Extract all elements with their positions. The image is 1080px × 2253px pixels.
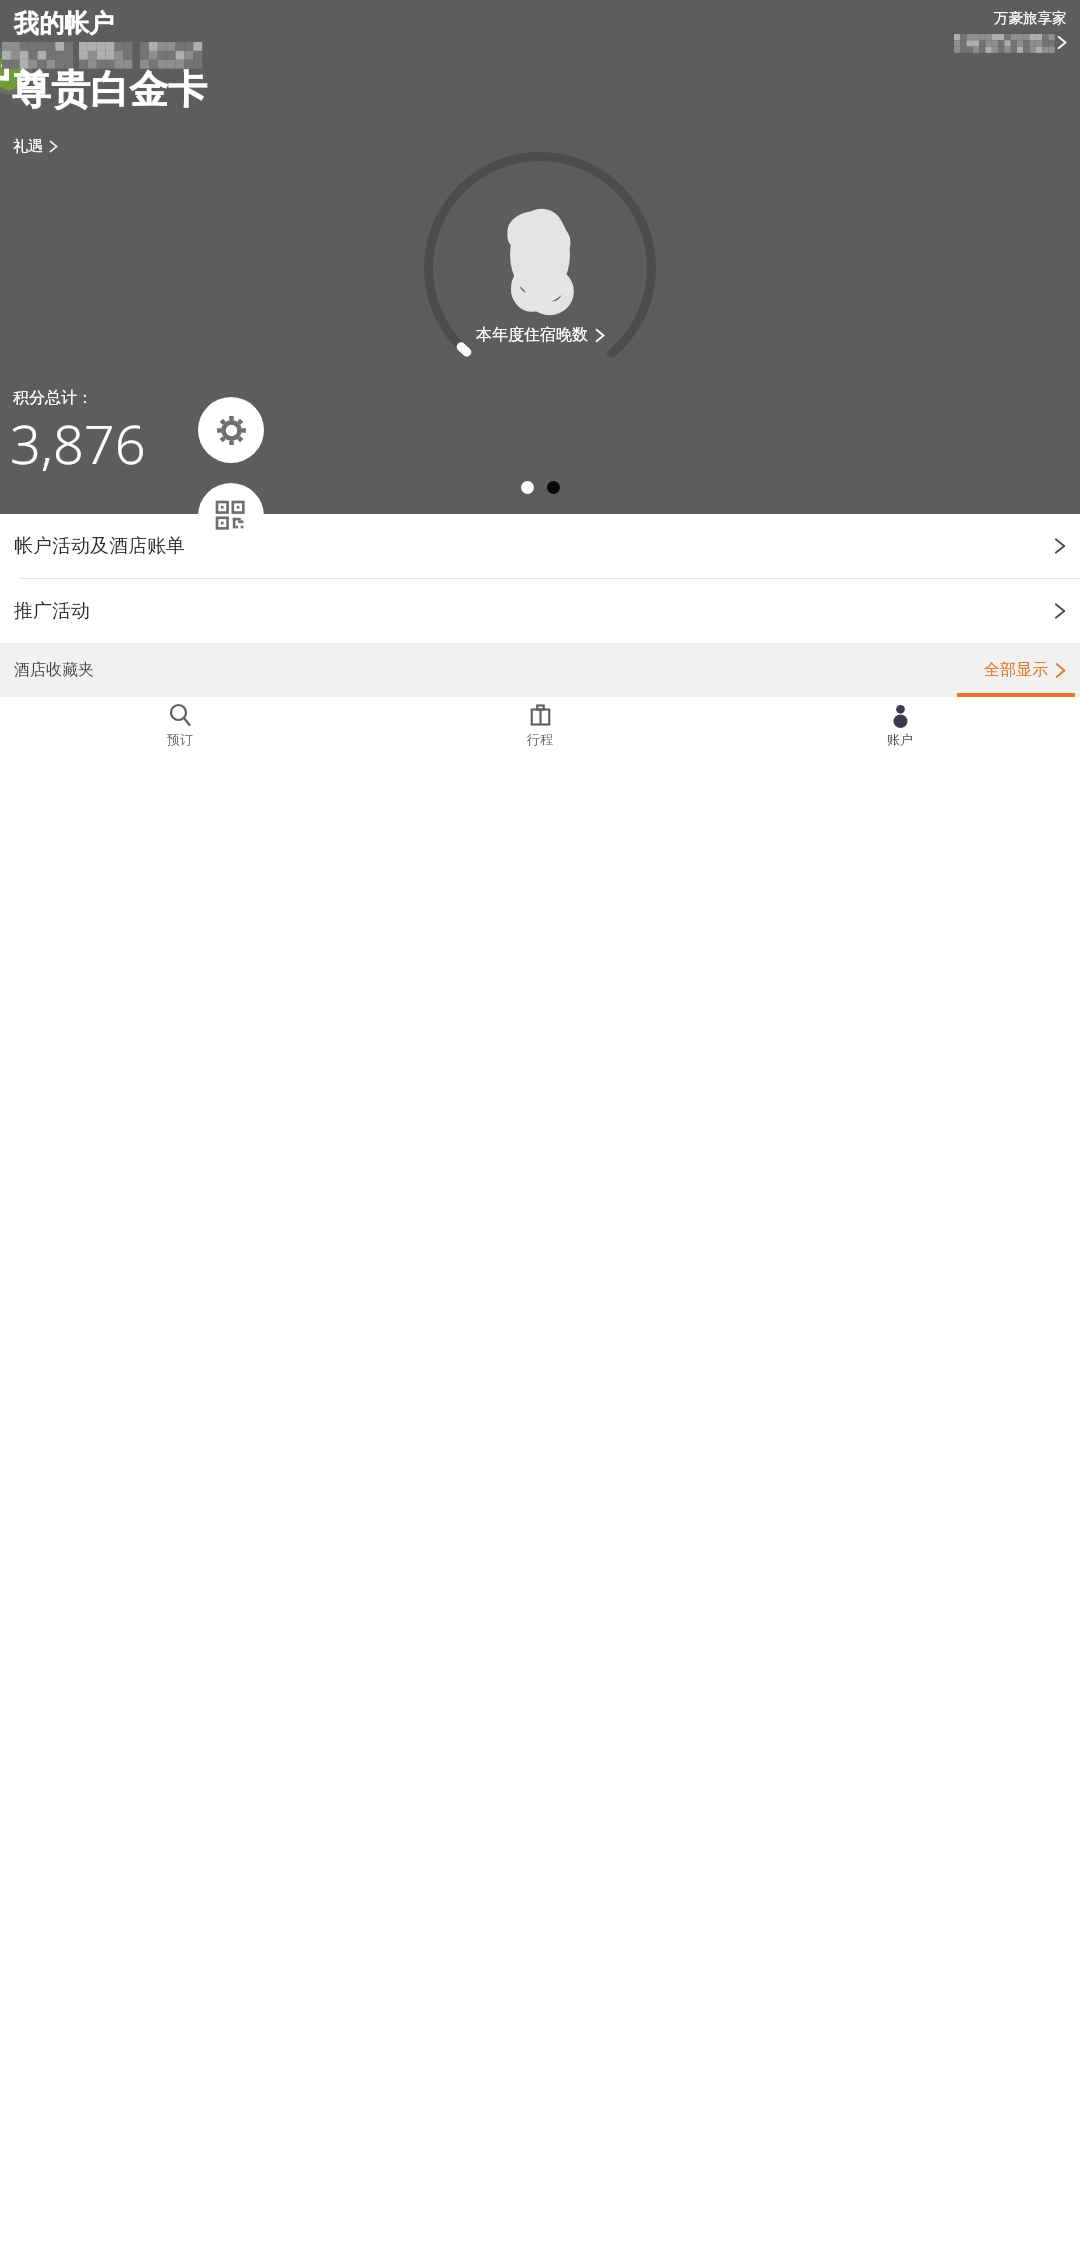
button[interactable] <box>954 32 1067 53</box>
staticText: 预订 <box>167 731 193 747</box>
button[interactable]: Scan QR code <box>198 483 264 549</box>
button[interactable] <box>547 481 560 494</box>
button[interactable] <box>521 481 534 494</box>
staticText: 3,876 <box>10 406 146 480</box>
staticText: 尊贵白金卡 <box>12 65 207 114</box>
staticText: 本年度住宿晚数 <box>476 325 588 345</box>
staticText: 万豪旅享家 <box>994 9 1067 27</box>
staticText: 行程 <box>527 731 553 747</box>
staticText: 酒店收藏夹 <box>14 660 94 680</box>
button[interactable]: 推广活动 <box>0 579 1080 643</box>
button[interactable]: 行程 <box>360 697 720 752</box>
staticText: 我的帐户 <box>14 8 114 39</box>
button[interactable]: 预订 <box>0 697 360 752</box>
button[interactable]: 全部显示 <box>984 656 1066 684</box>
button[interactable]: 帐户活动及酒店账单 <box>0 514 1080 578</box>
staticText: 全部显示 <box>984 660 1048 680</box>
staticText: 礼遇 <box>13 137 43 156</box>
button[interactable]: 本年度住宿晚数 <box>472 322 609 348</box>
button[interactable]: Settings <box>198 397 264 463</box>
staticText: 积分总计： <box>13 388 93 408</box>
staticText: 账户 <box>887 731 913 747</box>
staticText: 帐户活动及酒店账单 <box>14 534 185 558</box>
staticText: 推广活动 <box>14 599 90 623</box>
button[interactable]: 账户 <box>720 697 1080 752</box>
button[interactable]: 礼遇 <box>13 135 58 158</box>
